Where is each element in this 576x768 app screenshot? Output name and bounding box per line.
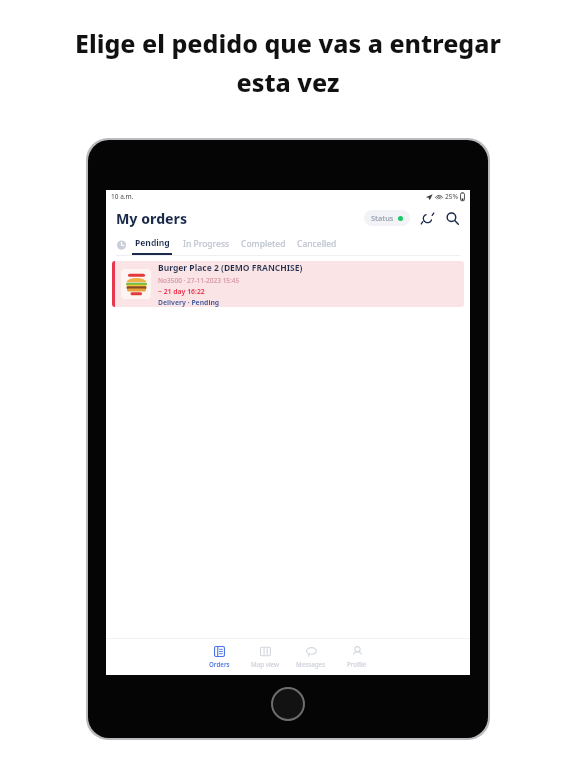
button[interactable]: Status [364,210,410,226]
button[interactable]: Cancelled [297,234,337,254]
button[interactable]: Search [442,208,462,228]
staticText: 25% [445,192,458,201]
staticText: Orders [209,660,230,668]
staticText: My orders [116,209,188,228]
button[interactable]: Burger Place 2 (DEMO FRANCHISE) [112,261,464,307]
staticText: Profile [347,660,367,668]
staticText: Burger Place 2 (DEMO FRANCHISE) [158,262,303,274]
button[interactable]: Pending [135,233,170,253]
button[interactable]: Profile [334,644,380,670]
staticText: Messages [296,660,326,668]
button[interactable]: Orders [196,644,242,670]
button[interactable]: Messages [288,644,334,670]
staticText: 10 a.m. [111,192,134,201]
button[interactable]: Completed [241,234,286,254]
staticText: Map view [251,660,280,668]
button[interactable]: Refresh [417,208,437,228]
staticText: Pending [135,237,170,249]
staticText: In Progress [183,238,230,250]
staticText: Completed [241,238,286,250]
button[interactable]: Map view [242,644,288,670]
staticText: Status [371,213,394,223]
button[interactable]: In Progress [183,234,230,254]
staticText: ~ 21 day 16:22 [158,287,205,296]
staticText: Cancelled [297,238,337,250]
staticText: Delivery · Pending [158,298,220,307]
staticText: Elige el pedido que vas a entregar esta … [75,26,501,100]
staticText: No3500 · 27-11-2023 15:45 [158,276,240,285]
